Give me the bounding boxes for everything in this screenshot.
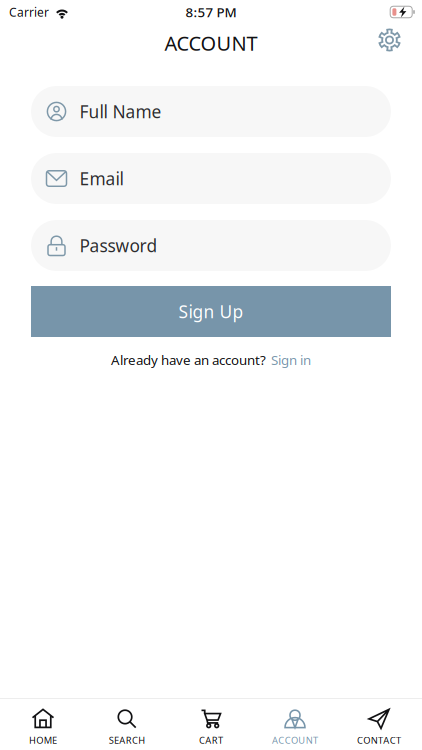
staticText: HOME	[29, 734, 57, 746]
staticText: Sign Up	[178, 300, 243, 323]
staticText: Password	[79, 234, 157, 257]
staticText: Full Name	[79, 100, 161, 123]
staticText: 8:57 PM	[185, 3, 236, 21]
button[interactable]: CONTACT	[337, 698, 421, 750]
staticText: SEARCH	[109, 734, 145, 746]
staticText: Carrier	[9, 4, 49, 20]
button[interactable]: ACCOUNT	[253, 698, 337, 750]
button[interactable]: Sign in	[271, 351, 311, 369]
button[interactable]: CART	[169, 698, 253, 750]
staticText: ACCOUNT	[164, 30, 257, 56]
staticText: Sign in	[271, 351, 311, 369]
staticText: CART	[199, 734, 223, 746]
button[interactable]: Email	[31, 153, 391, 204]
button[interactable]: Full Name	[31, 86, 391, 137]
button[interactable]: Password	[31, 220, 391, 271]
staticText: ACCOUNT	[272, 734, 318, 746]
button[interactable]: Settings	[368, 21, 411, 58]
staticText: Email	[79, 167, 123, 190]
staticText: Already have an account?	[111, 351, 266, 369]
button[interactable]: HOME	[1, 698, 85, 750]
button[interactable]: SEARCH	[85, 698, 169, 750]
staticText: CONTACT	[357, 734, 401, 746]
button[interactable]: Sign Up	[31, 286, 391, 337]
